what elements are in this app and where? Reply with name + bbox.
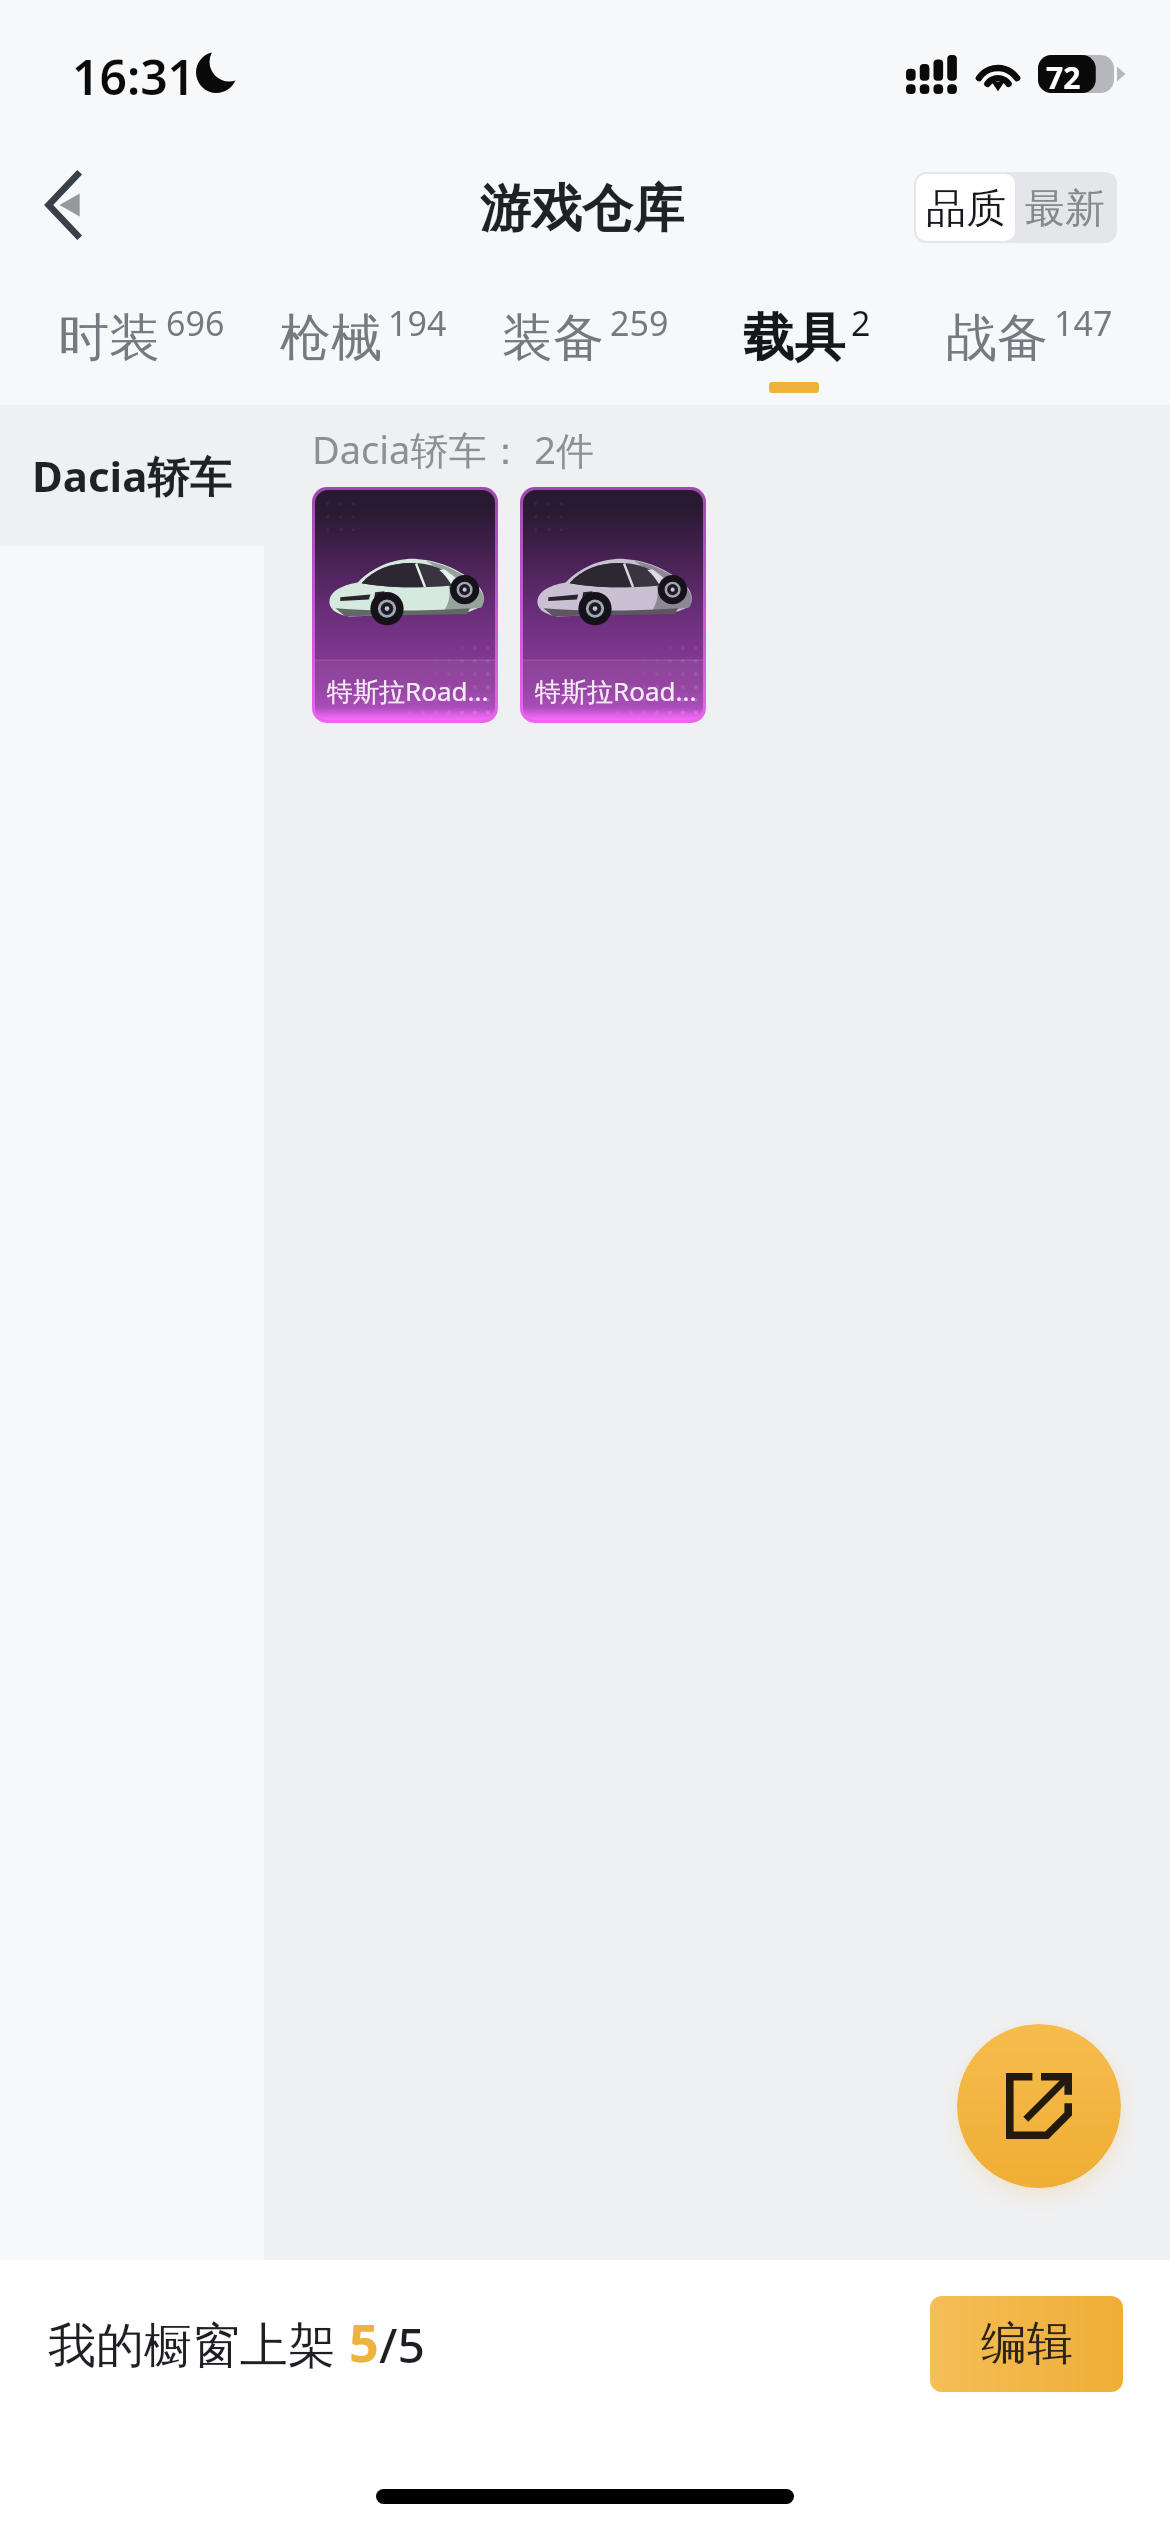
button[interactable]: 战备 — [918, 280, 1140, 405]
staticText: 品质 — [926, 183, 1006, 233]
staticText: 枪械 — [280, 306, 382, 370]
staticText: 16:31 — [72, 44, 196, 109]
button[interactable]: 枪械 — [252, 280, 474, 405]
staticText: 装备 — [502, 306, 604, 370]
staticText: /5 — [379, 2312, 425, 2377]
staticText: Dacia轿车： 2件 — [312, 423, 595, 475]
button[interactable]: 品质 — [916, 174, 1015, 241]
button[interactable]: 特斯拉Road... — [523, 490, 703, 720]
button[interactable]: 最新 — [1015, 174, 1115, 241]
button[interactable]: 时装 — [30, 280, 252, 405]
staticText: 696 — [166, 300, 225, 346]
staticText: 时装 — [58, 306, 160, 370]
staticText: 194 — [388, 300, 447, 346]
button[interactable]: 载具 — [696, 280, 918, 405]
staticText: Dacia轿车 — [32, 447, 232, 504]
staticText: 5 — [349, 2306, 379, 2377]
button[interactable]: Share — [957, 2024, 1121, 2188]
staticText: 最新 — [1025, 183, 1105, 233]
staticText: 特斯拉Road... — [327, 673, 489, 709]
staticText: 战备 — [946, 306, 1048, 370]
staticText: 编辑 — [981, 2315, 1073, 2373]
button[interactable]: Dacia轿车 — [0, 405, 264, 546]
staticText: 259 — [610, 300, 669, 346]
button[interactable]: Back — [8, 149, 120, 261]
staticText: 游戏仓库 — [480, 177, 684, 241]
button[interactable]: 编辑 — [930, 2296, 1123, 2392]
staticText: 载具 — [743, 306, 845, 370]
staticText: 2 — [851, 300, 871, 346]
button[interactable]: 特斯拉Road... — [315, 490, 495, 720]
button[interactable]: 装备 — [474, 280, 696, 405]
staticText: 72 — [1046, 57, 1081, 98]
staticText: 147 — [1054, 300, 1113, 346]
staticText: 我的橱窗上架 — [48, 2311, 349, 2377]
staticText: 特斯拉Road... — [535, 673, 697, 709]
